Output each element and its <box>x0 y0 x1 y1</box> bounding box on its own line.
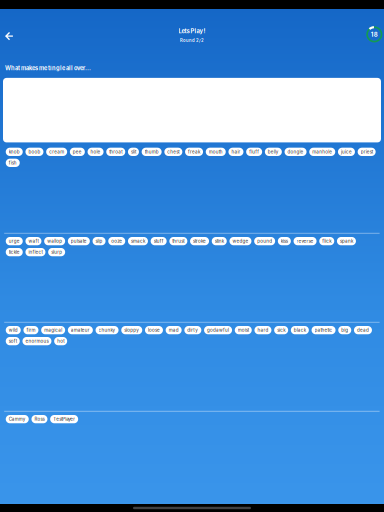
staticText: hard <box>257 327 268 333</box>
button[interactable]: thumb <box>142 148 162 156</box>
button[interactable]: wild <box>6 326 21 334</box>
staticText: TestPlayer <box>53 416 75 422</box>
staticText: manhole <box>312 149 332 155</box>
button[interactable]: fluff <box>246 148 262 156</box>
button[interactable]: cream <box>46 148 67 156</box>
button[interactable]: black <box>291 326 309 334</box>
staticText: Ross <box>34 416 44 422</box>
button[interactable]: tickle <box>6 248 23 256</box>
button[interactable]: urge <box>6 237 23 245</box>
staticText: reverse <box>296 238 313 244</box>
button[interactable]: amateur <box>68 326 93 334</box>
staticText: kiss <box>281 238 288 244</box>
button[interactable]: dirty <box>184 326 201 334</box>
button[interactable]: enormous <box>22 337 51 345</box>
button[interactable]: reverse <box>293 237 316 245</box>
button[interactable]: hair <box>228 148 243 156</box>
button[interactable]: soft <box>6 337 20 345</box>
button[interactable]: slit <box>128 148 139 156</box>
staticText: ooze <box>111 238 122 244</box>
staticText: Cammy <box>9 416 26 422</box>
button[interactable]: sick <box>274 326 288 334</box>
staticText: waft <box>28 238 38 244</box>
staticText: enormous <box>25 338 48 344</box>
button[interactable]: Time remaining 18 seconds <box>366 9 384 46</box>
button[interactable]: hard <box>254 326 271 334</box>
button[interactable]: freak <box>185 148 203 156</box>
button[interactable]: wedge <box>229 237 251 245</box>
staticText: juice <box>341 149 352 155</box>
staticText: fluff <box>249 149 259 155</box>
button[interactable]: juice <box>338 148 355 156</box>
staticText: mouth <box>209 149 223 155</box>
button[interactable]: slip <box>92 237 105 245</box>
staticText: pathetic <box>314 327 332 333</box>
button[interactable]: moist <box>235 326 252 334</box>
staticText: belly <box>268 149 279 155</box>
button[interactable]: dead <box>354 326 372 334</box>
staticText: flick <box>322 238 331 244</box>
button[interactable]: ooze <box>108 237 125 245</box>
button[interactable]: pee <box>70 148 85 156</box>
button[interactable]: chest <box>164 148 182 156</box>
staticText: inflect <box>28 249 42 255</box>
staticText: slit <box>131 149 136 155</box>
button[interactable]: mad <box>166 326 182 334</box>
button[interactable]: hole <box>87 148 103 156</box>
button[interactable]: pathetic <box>311 326 335 334</box>
staticText: 18 <box>371 31 378 38</box>
button[interactable]: knob <box>6 148 23 156</box>
button[interactable]: smack <box>128 237 148 245</box>
button[interactable]: stuff <box>151 237 167 245</box>
staticText: freak <box>188 149 200 155</box>
staticText: stroke <box>193 238 206 244</box>
button[interactable]: godawful <box>204 326 232 334</box>
button[interactable]: spank <box>337 237 356 245</box>
staticText: stink <box>215 238 224 244</box>
button[interactable]: chunky <box>95 326 118 334</box>
button[interactable]: wallop <box>44 237 65 245</box>
button[interactable]: firm <box>23 326 38 334</box>
button[interactable]: waft <box>25 237 41 245</box>
staticText: wedge <box>232 238 248 244</box>
button[interactable]: Back <box>0 11 20 45</box>
button[interactable]: belly <box>265 148 282 156</box>
button[interactable]: loose <box>145 326 163 334</box>
button[interactable]: slurp <box>48 248 65 256</box>
staticText: smack <box>131 238 145 244</box>
staticText: spank <box>340 238 353 244</box>
button[interactable]: fish <box>6 159 20 167</box>
button[interactable]: pound <box>254 237 275 245</box>
button[interactable]: boob <box>25 148 43 156</box>
button[interactable]: stink <box>212 237 227 245</box>
button[interactable]: TestPlayer <box>50 415 78 423</box>
button[interactable]: Answer field <box>0 78 384 142</box>
staticText: Lets Play! <box>178 28 205 35</box>
staticText: Round 2/2 <box>180 38 204 43</box>
staticText: black <box>294 327 306 333</box>
button[interactable]: mouth <box>206 148 226 156</box>
staticText: thumb <box>145 149 159 155</box>
button[interactable]: big <box>338 326 351 334</box>
button[interactable]: stroke <box>190 237 209 245</box>
button[interactable]: magical <box>41 326 65 334</box>
staticText: fish <box>9 160 17 166</box>
button[interactable]: pulsate <box>68 237 90 245</box>
button[interactable]: throat <box>106 148 125 156</box>
button[interactable]: kiss <box>278 237 291 245</box>
button[interactable]: Cammy <box>6 415 29 423</box>
button[interactable]: thrust <box>169 237 187 245</box>
staticText: boob <box>28 149 40 155</box>
staticText: priest <box>361 149 373 155</box>
button[interactable]: hot <box>54 337 67 345</box>
staticText: soft <box>9 338 17 344</box>
staticText: thrust <box>172 238 184 244</box>
button[interactable]: priest <box>358 148 376 156</box>
button[interactable]: sloppy <box>121 326 142 334</box>
staticText: sloppy <box>124 327 139 333</box>
button[interactable]: inflect <box>25 248 45 256</box>
button[interactable]: dongle <box>284 148 306 156</box>
button[interactable]: flick <box>319 237 334 245</box>
button[interactable]: manhole <box>309 148 335 156</box>
button[interactable]: Ross <box>31 415 47 423</box>
